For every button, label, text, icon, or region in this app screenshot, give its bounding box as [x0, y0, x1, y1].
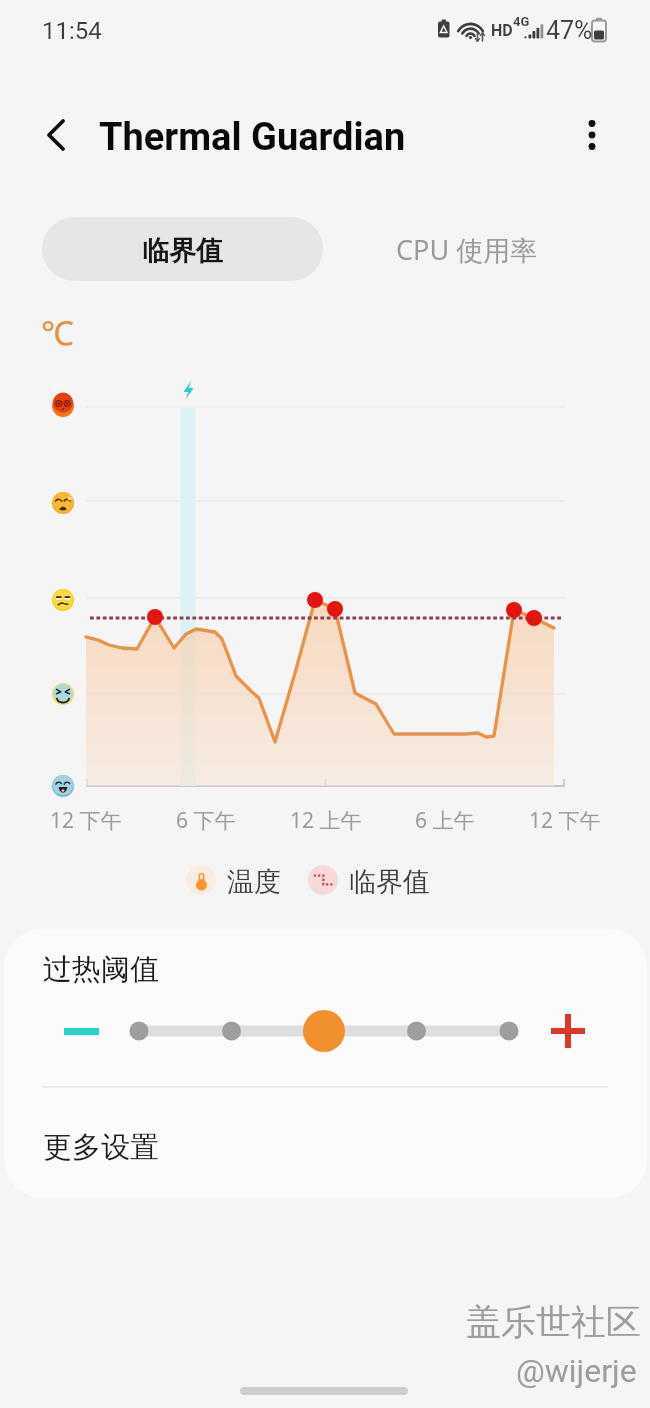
staticText: 过热阈值 [43, 951, 159, 988]
button[interactable]: CPU 使用率 [383, 217, 551, 281]
staticText: Thermal Guardian [99, 115, 406, 160]
button[interactable]: 温度 [186, 865, 281, 895]
button[interactable]: Back [28, 107, 84, 163]
staticText: 盖乐世社区 [466, 1300, 641, 1344]
staticText: ℃ [41, 310, 74, 355]
staticText: 6 下午 [176, 806, 236, 835]
button[interactable]: 临界值 [308, 865, 430, 895]
staticText: CPU 使用率 [396, 231, 538, 268]
button[interactable]: 更多设置 [4, 1097, 647, 1197]
staticText: 11:54 [42, 17, 102, 45]
staticText: 更多设置 [43, 1129, 159, 1166]
staticText: 12 下午 [50, 806, 122, 835]
button[interactable]: 过热阈值 [4, 944, 647, 994]
staticText: 临界值 [349, 865, 430, 895]
staticText: 12 下午 [529, 806, 601, 835]
button[interactable]: 临界值 [42, 217, 323, 281]
staticText: 4G [513, 14, 530, 29]
button[interactable]: Increase threshold [533, 1001, 603, 1061]
staticText: 12 上午 [290, 806, 362, 835]
staticText: HD [491, 21, 513, 40]
button[interactable]: Decrease threshold [44, 1001, 119, 1061]
staticText: 临界值 [142, 234, 223, 268]
staticText: @wijerje [516, 1352, 637, 1390]
staticText: 温度 [227, 865, 281, 895]
staticText: 6 上午 [415, 806, 475, 835]
button[interactable]: More options [564, 107, 620, 163]
staticText: 47% [546, 16, 593, 45]
